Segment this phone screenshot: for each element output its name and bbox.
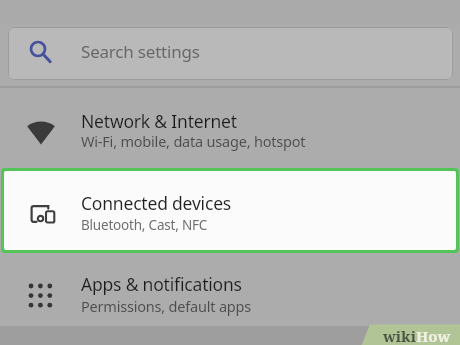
staticText: Connected devices (81, 191, 231, 215)
staticText: Wi-Fi, mobile, data usage, hotspot (81, 131, 306, 151)
staticText: Network & Internet (81, 109, 237, 133)
button[interactable] (0, 92, 460, 168)
button[interactable] (1, 168, 459, 253)
staticText: How (416, 326, 451, 345)
button[interactable] (0, 255, 460, 327)
staticText: Permissions, default apps (81, 296, 252, 316)
staticText: Bluetooth, Cast, NFC (81, 216, 208, 234)
staticText: Search settings (81, 40, 200, 63)
staticText: wiki (383, 326, 416, 345)
staticText: Apps & notifications (81, 272, 242, 296)
button[interactable] (8, 27, 453, 80)
